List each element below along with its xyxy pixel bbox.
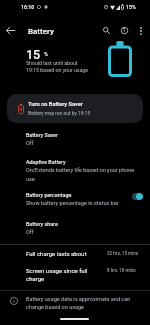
button[interactable]: Turn on Battery Saver — [7, 94, 143, 123]
button[interactable]: Battery share — [0, 218, 150, 244]
staticText: % — [44, 51, 49, 58]
staticText: Battery Saver — [26, 132, 58, 138]
staticText: Battery share — [26, 221, 58, 227]
staticText: 16:10 — [21, 4, 35, 10]
staticText: Full charge lasts about — [26, 250, 87, 257]
staticText: Off — [26, 229, 34, 235]
staticText: Turn on Battery Saver — [28, 101, 83, 108]
staticText: 8 hrs, 18 mins — [107, 268, 136, 273]
button[interactable]: Screen usage since full charge — [0, 264, 150, 289]
button[interactable]: Search — [96, 20, 117, 41]
staticText: Off — [26, 140, 34, 146]
staticText: ? — [123, 28, 126, 33]
button[interactable]: Adaptive Battery — [0, 156, 150, 188]
button[interactable]: More options — [130, 20, 150, 41]
staticText: 15% — [126, 4, 136, 10]
button[interactable]: Battery percentage — [0, 189, 150, 215]
staticText: Battery may run out by 19:15 — [28, 110, 91, 116]
staticText: On/Extends battery life based on your ph… — [26, 167, 135, 182]
staticText: Battery usage data is approximate and ca… — [26, 296, 131, 311]
staticText: Show battery percentage in status bar — [26, 200, 119, 206]
button[interactable]: Help — [114, 20, 135, 41]
staticText: Should last until about 19:15 based on y… — [26, 60, 88, 73]
staticText: Screen usage since full charge — [26, 267, 88, 282]
staticText: Battery percentage — [26, 192, 72, 198]
staticText: Adaptive Battery — [26, 159, 66, 165]
staticText: 15 — [26, 47, 41, 62]
staticText: Battery — [28, 27, 54, 36]
button[interactable]: Back — [0, 20, 21, 41]
button[interactable]: Full charge lasts about — [0, 247, 150, 264]
staticText: 22 hrs, 15 mins — [107, 251, 139, 256]
button[interactable]: Battery Saver — [0, 129, 150, 155]
